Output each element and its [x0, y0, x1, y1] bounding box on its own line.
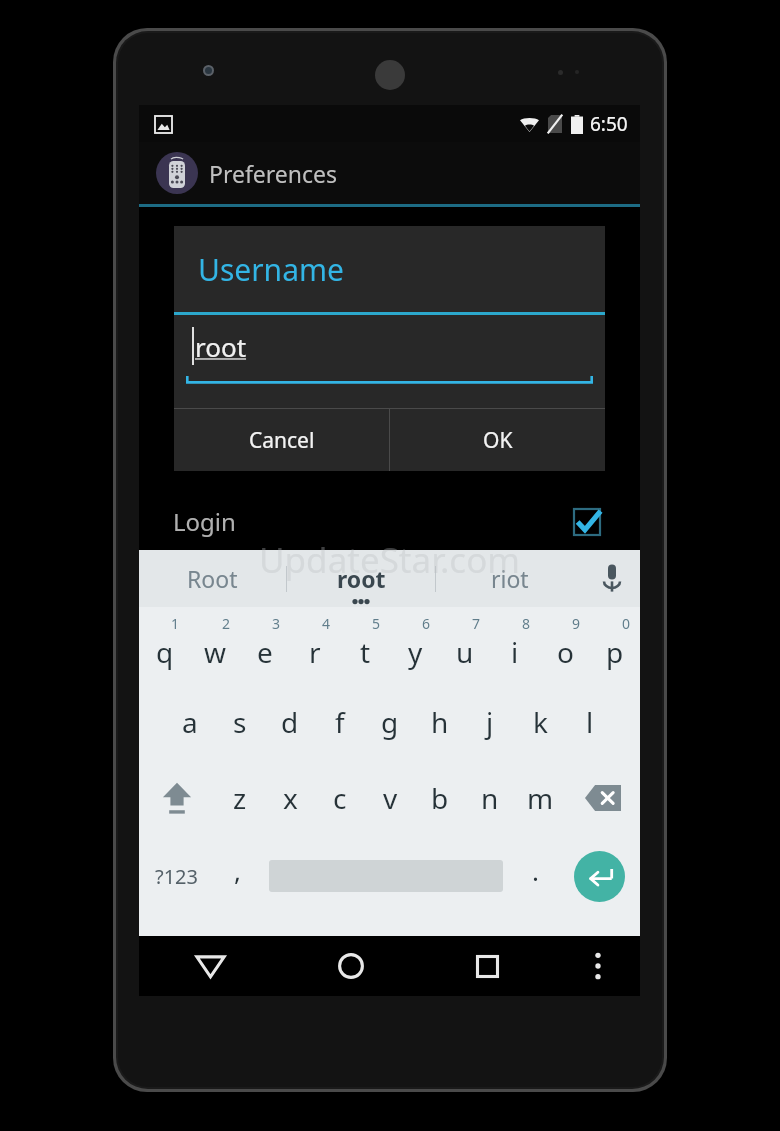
button[interactable]: b — [415, 760, 465, 836]
staticText: s — [233, 703, 247, 741]
button[interactable]: 9 — [540, 607, 590, 684]
staticText: 1 — [171, 614, 180, 633]
staticText: 2 — [222, 614, 231, 633]
staticText: d — [281, 703, 299, 741]
staticText: g — [381, 703, 399, 741]
button[interactable]: Login — [139, 493, 640, 550]
staticText: 3 — [272, 614, 281, 633]
button[interactable]: root — [287, 550, 435, 607]
staticText: x — [283, 779, 298, 817]
button[interactable]: 7 — [440, 607, 490, 684]
button[interactable]: Preferences — [139, 142, 640, 204]
staticText: ?123 — [155, 863, 198, 890]
button[interactable]: z — [215, 760, 265, 836]
staticText: root — [337, 563, 386, 594]
button[interactable]: root — [186, 321, 593, 385]
button[interactable]: 4 — [290, 607, 340, 684]
staticText: 6:50 — [590, 111, 628, 137]
button[interactable]: j — [465, 684, 515, 760]
staticText: e — [257, 633, 273, 671]
button[interactable]: x — [265, 760, 315, 836]
button[interactable]: s — [215, 684, 265, 760]
staticText: 9 — [572, 614, 581, 633]
button[interactable]: Voice input — [584, 550, 640, 607]
button[interactable]: k — [515, 684, 565, 760]
staticText: o — [557, 633, 574, 671]
button[interactable]: 1 — [139, 607, 190, 684]
staticText: 4 — [322, 614, 331, 633]
button[interactable]: Home — [282, 936, 419, 996]
button[interactable]: l — [565, 684, 615, 760]
button[interactable]: 5 — [340, 607, 390, 684]
button[interactable]: Root — [139, 550, 286, 607]
button[interactable]: 6 — [390, 607, 440, 684]
button[interactable]: . — [512, 836, 558, 916]
staticText: UpdateStar.com — [259, 536, 521, 584]
staticText: , — [234, 853, 241, 888]
button[interactable]: 3 — [240, 607, 290, 684]
staticText: root — [195, 329, 247, 364]
button[interactable]: m — [515, 760, 565, 836]
button[interactable]: Shift — [139, 760, 215, 836]
button[interactable]: riot — [436, 550, 584, 607]
button[interactable]: v — [365, 760, 415, 836]
button[interactable]: d — [265, 684, 315, 760]
button[interactable]: a — [164, 684, 215, 760]
staticText: u — [456, 633, 474, 671]
staticText: Root — [187, 563, 238, 594]
button[interactable]: More options — [556, 936, 640, 996]
staticText: q — [156, 633, 174, 671]
button[interactable]: OK — [390, 409, 605, 471]
staticText: riot — [491, 563, 529, 594]
staticText: m — [527, 779, 554, 817]
staticText: v — [383, 779, 398, 817]
staticText: Preferences — [209, 158, 338, 189]
staticText: OK — [483, 426, 513, 455]
button[interactable]: 0 — [590, 607, 640, 684]
staticText: r — [309, 633, 321, 671]
button[interactable]: ?123 — [139, 836, 214, 916]
button[interactable]: c — [315, 760, 365, 836]
staticText: Username — [198, 249, 344, 290]
staticText: l — [586, 703, 594, 741]
staticText: 5 — [372, 614, 381, 633]
button[interactable]: Hide keyboard — [139, 936, 282, 996]
staticText: h — [431, 703, 449, 741]
button[interactable]: Backspace — [565, 760, 640, 836]
button[interactable]: 2 — [190, 607, 240, 684]
staticText: . — [532, 853, 539, 888]
staticText: b — [431, 779, 449, 817]
button[interactable]: h — [415, 684, 465, 760]
button[interactable]: f — [315, 684, 365, 760]
button[interactable]: Recent apps — [419, 936, 556, 996]
staticText: 0 — [622, 614, 631, 633]
staticText: a — [182, 703, 198, 741]
staticText: t — [360, 633, 371, 671]
staticText: y — [408, 633, 423, 671]
staticText: Cancel — [249, 426, 315, 455]
staticText: i — [511, 633, 519, 671]
button[interactable]: , — [214, 836, 260, 916]
staticText: 8 — [522, 614, 531, 633]
staticText: 7 — [472, 614, 481, 633]
staticText: f — [335, 703, 345, 741]
button[interactable]: g — [365, 684, 415, 760]
staticText: w — [204, 633, 227, 671]
staticText: n — [481, 779, 499, 817]
button[interactable]: n — [465, 760, 515, 836]
button[interactable]: Cancel — [174, 409, 389, 471]
staticText: Login — [173, 505, 236, 538]
staticText: j — [486, 703, 494, 741]
button[interactable]: Enter — [558, 836, 640, 916]
button[interactable]: Space — [260, 836, 512, 916]
staticText: 6 — [422, 614, 431, 633]
staticText: z — [233, 779, 247, 817]
button[interactable]: 8 — [490, 607, 540, 684]
staticText: k — [533, 703, 548, 741]
staticText: c — [333, 779, 347, 817]
staticText: p — [606, 633, 624, 671]
